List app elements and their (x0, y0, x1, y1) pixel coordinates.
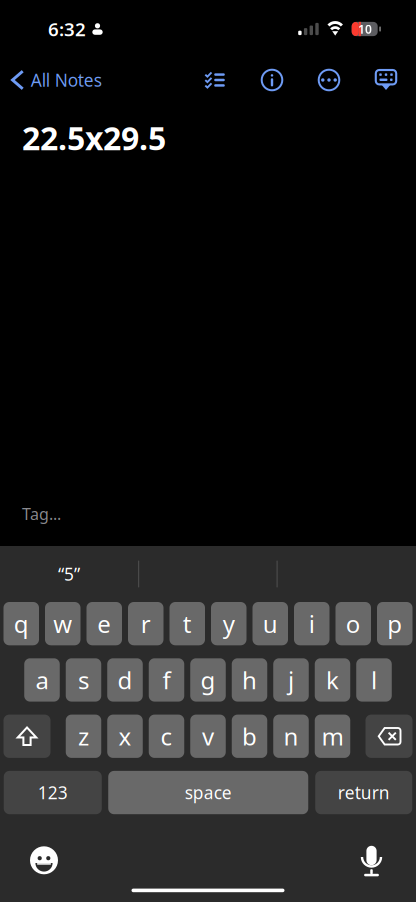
button[interactable]: “5” (0, 546, 138, 602)
staticText: m (321, 720, 343, 752)
button[interactable]: Shift (3, 715, 50, 758)
button[interactable]: o (335, 602, 371, 645)
staticText: x (118, 720, 131, 752)
staticText: return (338, 781, 390, 804)
staticText: e (97, 608, 111, 640)
button[interactable]: u (252, 602, 288, 645)
button[interactable]: p (377, 602, 412, 645)
staticText: 123 (38, 781, 68, 804)
staticText: l (371, 664, 377, 696)
button[interactable]: Dictate (351, 840, 391, 880)
button[interactable]: y (211, 602, 246, 645)
staticText: r (141, 608, 151, 640)
button[interactable]: j (273, 658, 309, 702)
staticText: t (183, 608, 192, 640)
staticText: w (53, 608, 72, 640)
staticText: space (185, 781, 232, 804)
staticText: a (35, 664, 48, 696)
staticText: z (78, 720, 89, 752)
staticText: y (223, 608, 235, 640)
staticText: v (202, 720, 214, 752)
button[interactable]: Delete (365, 715, 412, 758)
button[interactable]: x (107, 715, 143, 758)
button[interactable]: Info (254, 58, 290, 102)
button[interactable]: d (107, 658, 143, 702)
staticText: p (387, 608, 402, 640)
staticText: n (283, 720, 298, 752)
staticText: d (117, 664, 132, 696)
button[interactable]: n (273, 715, 309, 758)
button[interactable]: q (3, 602, 39, 645)
button[interactable]: i (294, 602, 329, 645)
button[interactable]: b (232, 715, 267, 758)
staticText: Tag... (22, 503, 61, 524)
staticText: s (78, 664, 89, 696)
button[interactable]: m (315, 715, 350, 758)
button[interactable]: r (128, 602, 163, 645)
button[interactable]: More (311, 58, 347, 102)
staticText: All Notes (31, 68, 102, 91)
staticText: u (263, 608, 278, 640)
staticText: i (309, 608, 315, 640)
button[interactable]: z (66, 715, 101, 758)
button[interactable]: k (315, 658, 350, 702)
staticText: c (160, 720, 172, 752)
button[interactable]: w (45, 602, 80, 645)
button[interactable]: c (149, 715, 184, 758)
button[interactable]: 123 (4, 771, 102, 814)
staticText: b (242, 720, 257, 752)
button[interactable]: l (356, 658, 392, 702)
staticText: j (288, 664, 294, 696)
button[interactable]: f (149, 658, 184, 702)
button[interactable]: h (232, 658, 267, 702)
staticText: k (326, 664, 339, 696)
button[interactable]: Emoji (24, 840, 64, 880)
staticText: 10 (358, 21, 372, 37)
button[interactable]: g (190, 658, 226, 702)
button[interactable]: Checklist (197, 58, 233, 102)
staticText: 22.5x29.5 (22, 116, 166, 159)
button[interactable]: v (190, 715, 226, 758)
staticText: 6:32 (48, 17, 86, 41)
button[interactable]: space (108, 771, 308, 814)
staticText: “5” (58, 562, 80, 585)
staticText: f (162, 664, 170, 696)
staticText: o (346, 608, 361, 640)
button[interactable]: All Notes (0, 58, 112, 102)
button[interactable]: return (315, 771, 412, 814)
staticText: g (200, 664, 215, 696)
button[interactable]: s (66, 658, 101, 702)
button[interactable]: e (86, 602, 122, 645)
staticText: h (242, 664, 257, 696)
button[interactable]: Hide Keyboard (368, 58, 404, 102)
button[interactable]: a (24, 658, 60, 702)
staticText: q (14, 608, 29, 640)
button[interactable]: t (169, 602, 205, 645)
